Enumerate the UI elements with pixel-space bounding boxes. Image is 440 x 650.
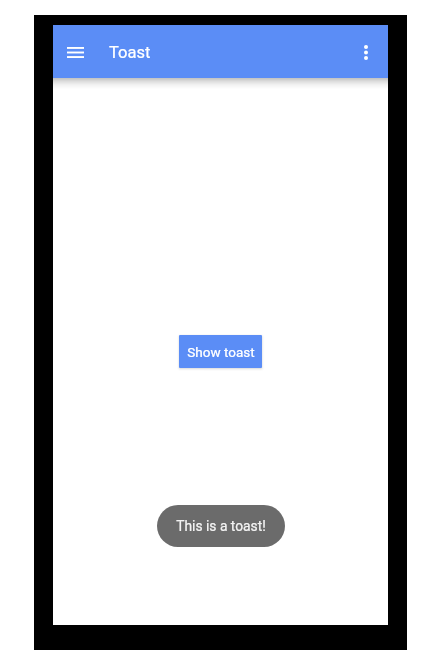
button[interactable]: Show toast [179,335,262,368]
button[interactable]: More options [347,33,385,71]
button[interactable]: Open navigation drawer [56,33,94,71]
staticText: Toast [109,43,151,62]
staticText: This is a toast! [176,518,266,534]
staticText: Show toast [187,344,255,360]
